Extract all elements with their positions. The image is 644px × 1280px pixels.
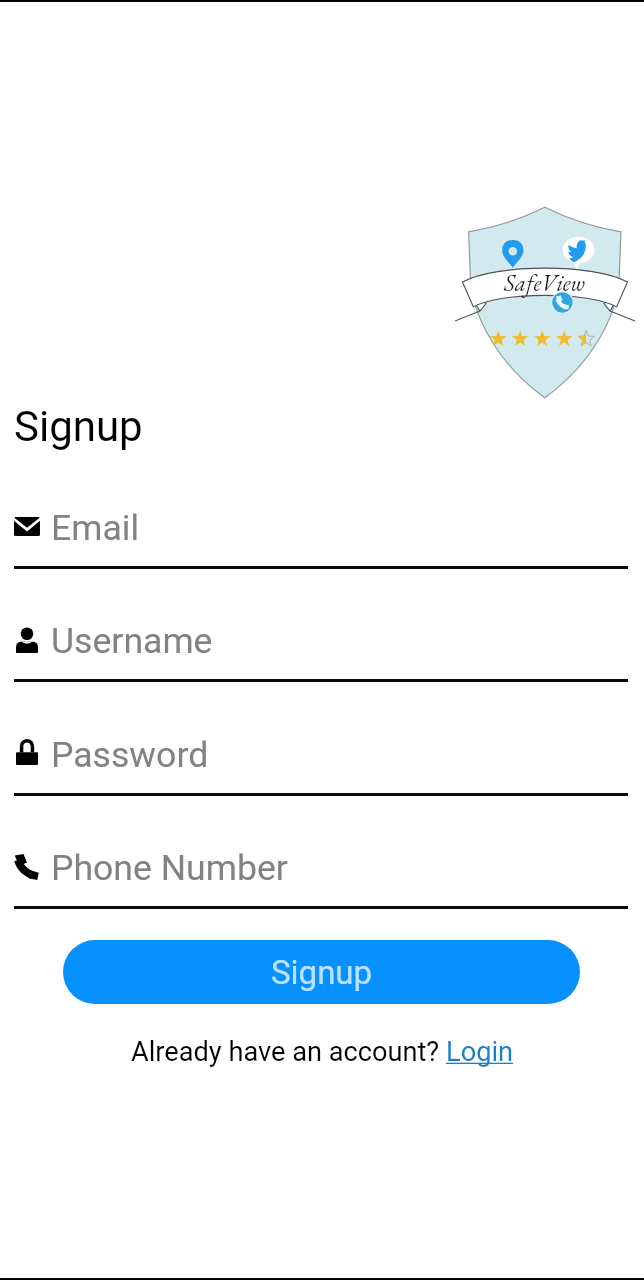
other: Phone Number [14, 854, 39, 880]
other: Email [14, 517, 40, 536]
staticText: Phone Number [51, 847, 288, 889]
staticText: Password [51, 734, 209, 776]
other: Username [16, 627, 38, 653]
staticText: Already have an account? [131, 1036, 446, 1068]
button[interactable]: Login [446, 1036, 514, 1068]
staticText: Username [51, 620, 213, 662]
staticText: Signup [271, 953, 373, 992]
staticText: Email [51, 507, 140, 549]
button[interactable]: Signup [63, 940, 580, 1004]
staticText: Signup [14, 402, 143, 451]
staticText: Login [446, 1036, 514, 1068]
other: Password [16, 741, 38, 765]
staticText: SafeView [504, 268, 585, 298]
